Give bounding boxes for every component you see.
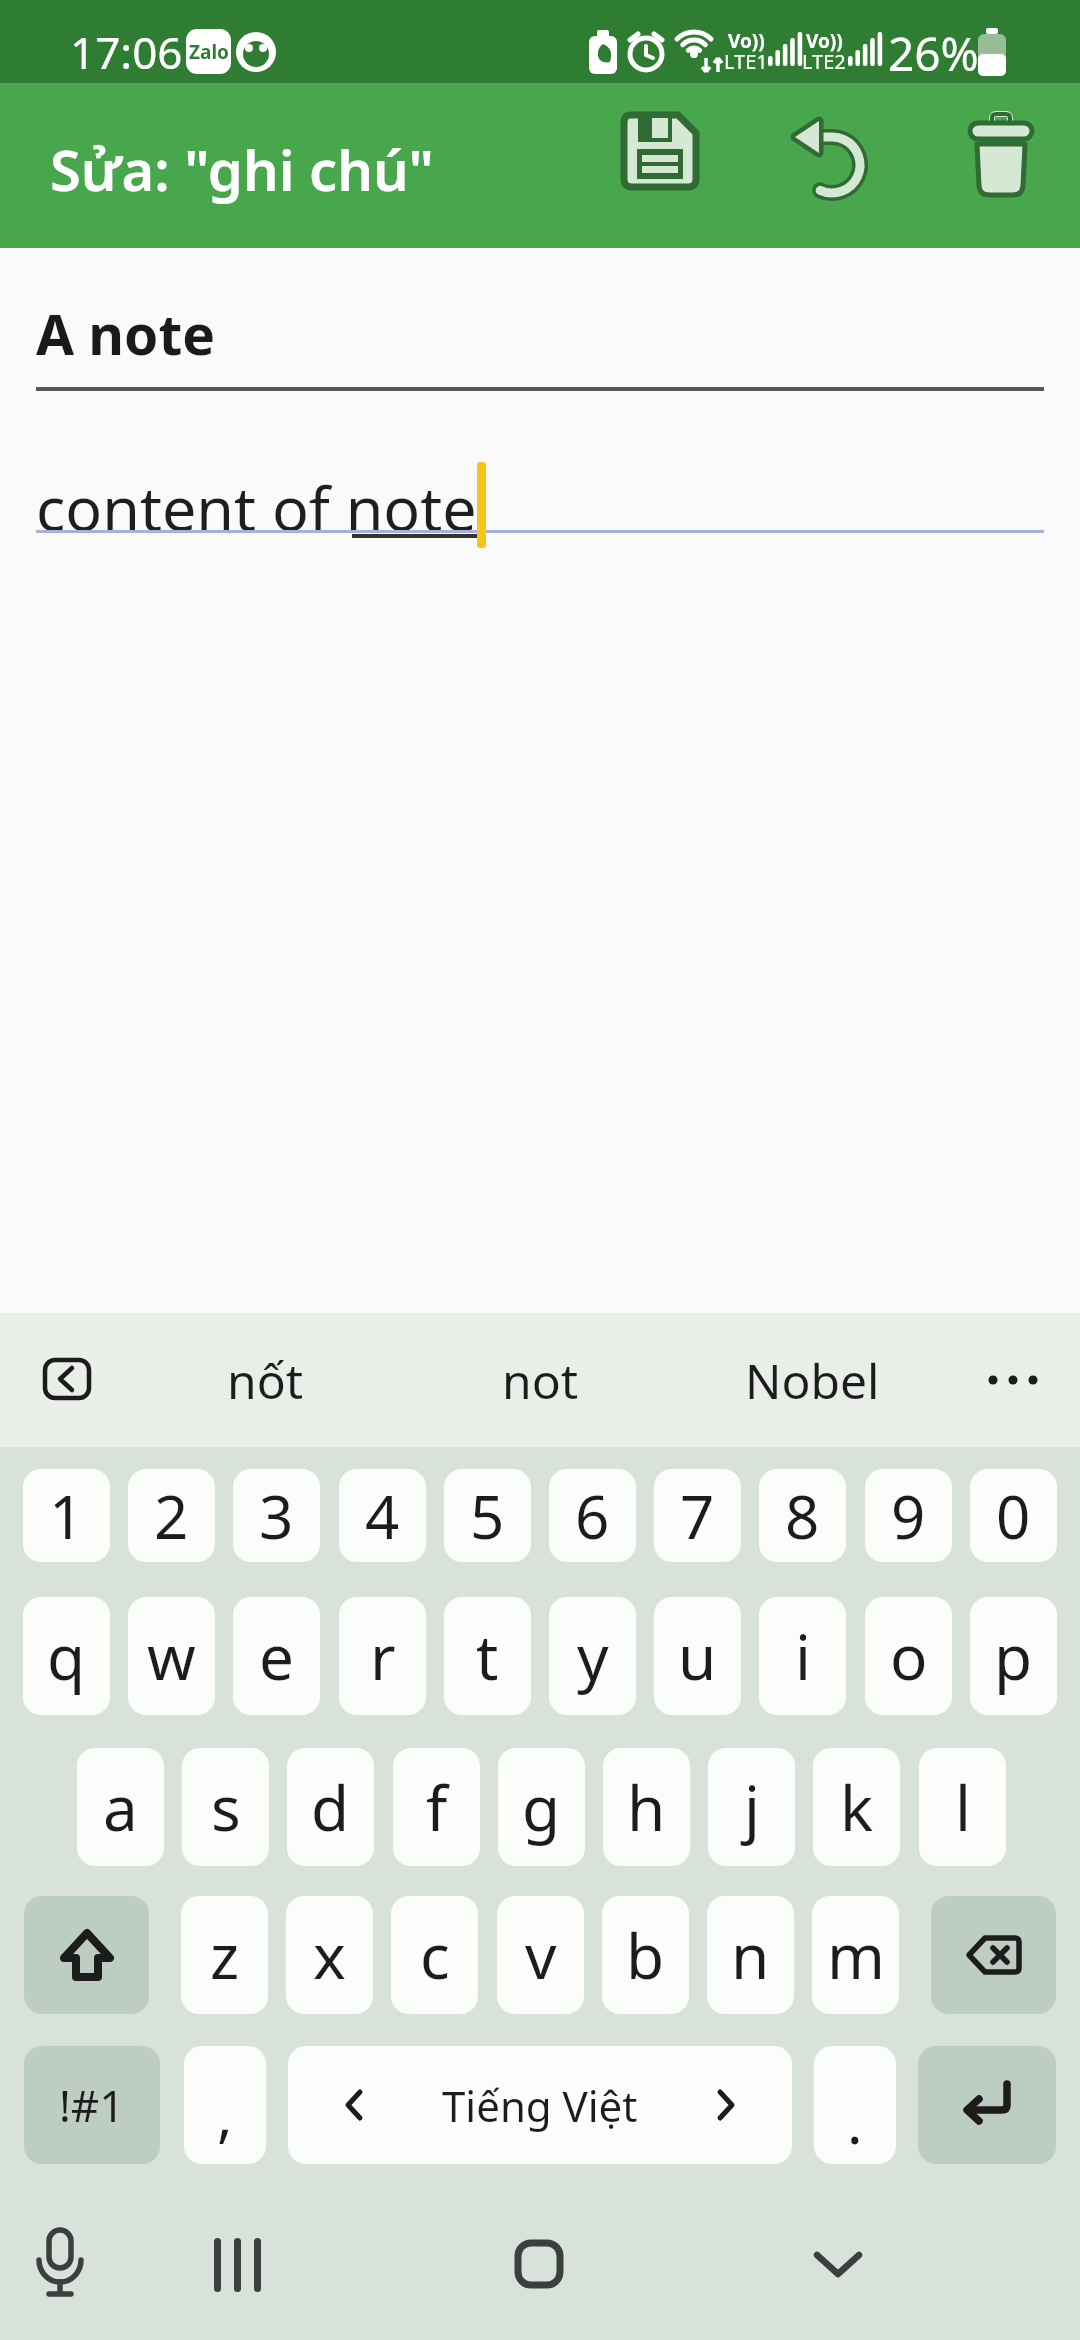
staticText: s: [211, 1765, 241, 1849]
button[interactable]: .: [814, 2046, 896, 2164]
button[interactable]: r: [339, 1597, 426, 1715]
button[interactable]: not: [440, 1313, 640, 1447]
button[interactable]: z: [181, 1896, 268, 2014]
button[interactable]: m: [812, 1896, 899, 2014]
staticText: n: [731, 1913, 770, 1997]
staticText: x: [313, 1913, 346, 1997]
staticText: d: [311, 1765, 350, 1849]
button[interactable]: 5: [444, 1469, 531, 1562]
button[interactable]: p: [970, 1597, 1057, 1715]
button[interactable]: 2: [128, 1469, 215, 1562]
staticText: 9: [891, 1475, 926, 1557]
button[interactable]: d: [287, 1748, 374, 1866]
button[interactable]: 6: [549, 1469, 636, 1562]
staticText: LTE2: [802, 48, 846, 75]
button[interactable]: [604, 109, 716, 221]
staticText: 1: [49, 1475, 84, 1557]
staticText: 2: [154, 1475, 189, 1557]
staticText: b: [626, 1913, 665, 1997]
button[interactable]: j: [708, 1748, 795, 1866]
staticText: p: [994, 1614, 1033, 1698]
button[interactable]: b: [602, 1896, 689, 2014]
button[interactable]: n: [707, 1896, 794, 2014]
button[interactable]: 7: [654, 1469, 741, 1562]
button[interactable]: i: [759, 1597, 846, 1715]
staticText: Sửa: "ghi chú": [50, 131, 434, 207]
button[interactable]: t: [444, 1597, 531, 1715]
staticText: Vo)): [806, 28, 843, 54]
staticText: 4: [365, 1475, 400, 1557]
button[interactable]: 3: [233, 1469, 320, 1562]
staticText: w: [147, 1614, 196, 1698]
button[interactable]: l: [919, 1748, 1006, 1866]
button[interactable]: x: [286, 1896, 373, 2014]
staticText: t: [476, 1614, 499, 1698]
button[interactable]: !#1: [24, 2046, 160, 2164]
button[interactable]: [34, 2228, 86, 2302]
button[interactable]: h: [603, 1748, 690, 1866]
button[interactable]: w: [128, 1597, 215, 1715]
button[interactable]: Nobel: [712, 1313, 912, 1447]
button[interactable]: Tiếng Việt: [288, 2046, 792, 2164]
staticText: 0: [996, 1475, 1031, 1557]
button[interactable]: c: [391, 1896, 478, 2014]
button[interactable]: o: [865, 1597, 952, 1715]
staticText: nốt: [227, 1348, 304, 1413]
staticText: !#1: [59, 2075, 125, 2135]
button[interactable]: 9: [865, 1469, 952, 1562]
button[interactable]: g: [498, 1748, 585, 1866]
staticText: .: [847, 2082, 863, 2161]
staticText: Tiếng Việt: [442, 2077, 638, 2134]
button[interactable]: [918, 2046, 1056, 2164]
staticText: A note: [36, 296, 216, 371]
staticText: 5: [470, 1475, 505, 1557]
staticText: 17:06: [70, 22, 183, 82]
button[interactable]: [43, 1358, 91, 1400]
staticText: LTE1: [724, 48, 768, 75]
button[interactable]: [514, 2239, 564, 2289]
staticText: content of note: [36, 466, 477, 549]
staticText: Nobel: [745, 1348, 880, 1413]
button[interactable]: y: [549, 1597, 636, 1715]
button[interactable]: [948, 109, 1060, 221]
staticText: 6: [575, 1475, 610, 1557]
staticText: u: [678, 1614, 717, 1698]
staticText: g: [522, 1765, 561, 1849]
button[interactable]: v: [497, 1896, 584, 2014]
staticText: l: [955, 1765, 971, 1849]
button[interactable]: 1: [23, 1469, 110, 1562]
staticText: a: [103, 1765, 138, 1849]
staticText: k: [840, 1765, 874, 1849]
staticText: f: [426, 1765, 448, 1849]
staticText: ,: [217, 2074, 233, 2153]
button[interactable]: q: [23, 1597, 110, 1715]
button[interactable]: f: [393, 1748, 480, 1866]
button[interactable]: ,: [184, 2046, 266, 2164]
button[interactable]: a: [77, 1748, 164, 1866]
button[interactable]: 8: [759, 1469, 846, 1562]
button[interactable]: [812, 2248, 864, 2282]
staticText: Zalo: [189, 39, 229, 65]
button[interactable]: [931, 1896, 1056, 2014]
button[interactable]: nốt: [165, 1313, 365, 1447]
button[interactable]: 4: [339, 1469, 426, 1562]
staticText: r: [370, 1614, 396, 1698]
button[interactable]: s: [182, 1748, 269, 1866]
button[interactable]: [24, 1896, 149, 2014]
staticText: z: [210, 1913, 240, 1997]
staticText: j: [744, 1765, 760, 1849]
staticText: y: [577, 1614, 609, 1698]
staticText: q: [47, 1614, 86, 1698]
staticText: not: [502, 1348, 579, 1413]
staticText: 3: [259, 1475, 294, 1557]
staticText: 26%: [888, 22, 979, 85]
staticText: c: [420, 1913, 450, 1997]
staticText: 7: [680, 1475, 715, 1557]
button[interactable]: [985, 1370, 1041, 1390]
button[interactable]: k: [813, 1748, 900, 1866]
button[interactable]: [776, 109, 888, 221]
button[interactable]: u: [654, 1597, 741, 1715]
button[interactable]: e: [233, 1597, 320, 1715]
button[interactable]: 0: [970, 1469, 1057, 1562]
button[interactable]: [210, 2238, 266, 2294]
